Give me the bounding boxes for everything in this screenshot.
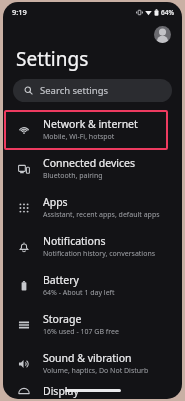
button[interactable]: Connected devices <box>3 149 182 188</box>
staticText: Sound & vibration <box>43 351 132 365</box>
staticText: Notifications <box>43 234 106 248</box>
staticText: Apps <box>43 195 68 209</box>
button[interactable]: Notifications <box>3 227 182 266</box>
staticText: Volume, haptics, Do Not Disturb <box>43 366 149 376</box>
button[interactable]: Storage <box>3 305 182 344</box>
staticText: Settings <box>16 46 89 72</box>
staticText: 64% - About 1 day left <box>43 288 115 298</box>
staticText: Bluetooth, pairing <box>43 171 103 181</box>
button[interactable]: Network & internet <box>3 110 182 149</box>
button[interactable]: Apps <box>3 188 182 227</box>
staticText: Notification history, conversations <box>43 249 156 259</box>
button[interactable]: Account <box>154 26 171 43</box>
button[interactable]: Sound & vibration <box>3 344 182 383</box>
staticText: Battery <box>43 273 79 287</box>
staticText: Display <box>43 384 79 398</box>
button[interactable]: Display <box>3 383 182 399</box>
button[interactable]: Battery <box>3 266 182 305</box>
staticText: 16% used - 107 GB free <box>43 327 119 337</box>
staticText: Assistant, recent apps, default apps <box>43 210 160 220</box>
staticText: Search settings <box>40 84 109 97</box>
staticText: 64% <box>161 8 174 17</box>
staticText: Storage <box>43 312 82 326</box>
button[interactable]: Search settings <box>13 79 172 102</box>
staticText: 9:19 <box>12 7 27 17</box>
staticText: Mobile, Wi-Fi, hotspot <box>43 132 115 142</box>
staticText: Network & internet <box>43 117 138 131</box>
staticText: Connected devices <box>43 156 136 170</box>
